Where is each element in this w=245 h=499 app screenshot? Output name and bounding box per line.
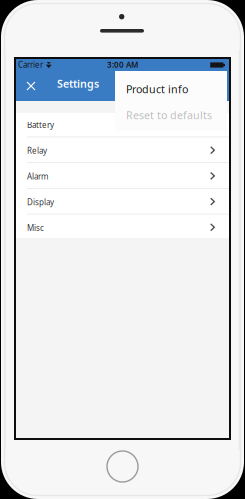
staticText: Misc (27, 222, 44, 233)
button[interactable]: Close (16, 71, 46, 101)
staticText: Alarm (27, 171, 48, 182)
button[interactable]: Reset to defaults (115, 102, 227, 128)
staticText: Relay (27, 145, 47, 156)
button[interactable]: Display (16, 189, 229, 214)
staticText: Settings (57, 76, 99, 91)
staticText: Battery (27, 120, 54, 130)
staticText: Display (27, 197, 54, 207)
staticText: Reset to defaults (126, 108, 212, 122)
button[interactable]: Misc (16, 214, 229, 239)
button[interactable]: Battery (16, 112, 229, 137)
staticText: 3:00 AM (107, 59, 138, 70)
button[interactable]: Alarm (16, 163, 229, 188)
staticText: Carrier (18, 59, 43, 70)
button[interactable]: Product info (115, 76, 227, 102)
button[interactable]: Relay (16, 137, 229, 162)
staticText: Product info (126, 82, 188, 96)
